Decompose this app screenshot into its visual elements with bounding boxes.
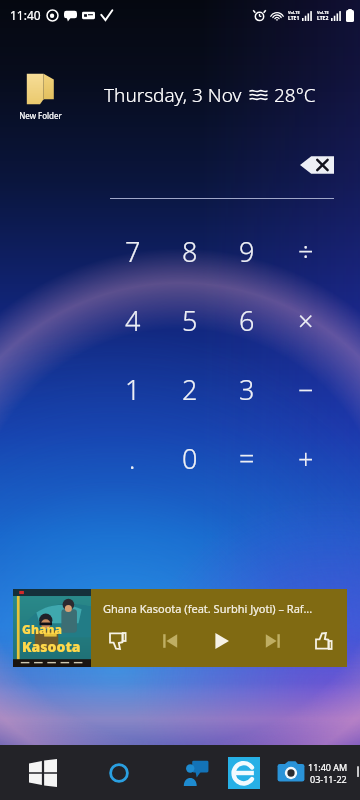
staticText: 0 <box>182 440 198 477</box>
staticText: VoLTE <box>288 10 300 15</box>
button[interactable]: × <box>275 286 337 355</box>
button[interactable]: 5 <box>161 286 218 355</box>
button[interactable]: 11:40 AM <box>308 761 348 785</box>
staticText: ÷ <box>298 233 314 270</box>
button[interactable]: Backspace <box>300 155 334 175</box>
button[interactable]: Thumbs down <box>103 626 133 656</box>
staticText: 28°C <box>274 82 316 108</box>
button[interactable]: Play <box>206 626 236 656</box>
staticText: = <box>239 440 255 477</box>
staticText: 1 <box>125 371 141 408</box>
button[interactable]: 7 <box>104 217 161 286</box>
button[interactable]: = <box>218 424 275 493</box>
button[interactable]: Thursday, 3 Nov <box>104 82 316 108</box>
button[interactable]: ÷ <box>275 217 337 286</box>
staticText: 11:40 <box>10 7 41 23</box>
button[interactable]: Next <box>258 626 288 656</box>
button[interactable]: Edge browser <box>228 757 260 789</box>
button[interactable]: Album art <box>13 589 91 667</box>
staticText: × <box>298 302 314 339</box>
button[interactable]: New Folder <box>14 72 66 121</box>
staticText: Ghana <box>22 621 62 637</box>
staticText: − <box>298 371 314 408</box>
staticText: 3 <box>239 371 255 408</box>
button[interactable]: 1 <box>104 355 161 424</box>
staticText: 5 <box>182 302 198 339</box>
staticText: 03-11-22 <box>310 773 347 785</box>
button[interactable]: − <box>275 355 337 424</box>
staticText: 7 <box>125 233 141 270</box>
button[interactable]: . <box>104 424 161 493</box>
button[interactable]: 9 <box>218 217 275 286</box>
staticText: 6 <box>239 302 255 339</box>
staticText: LTE1 <box>288 15 300 22</box>
button[interactable]: Start <box>26 756 60 790</box>
staticText: . <box>129 441 136 476</box>
staticText: 9 <box>239 233 255 270</box>
staticText: 11:40 AM <box>308 761 348 773</box>
staticText: 8 <box>182 233 198 270</box>
button[interactable]: Cortana <box>102 756 136 790</box>
button[interactable]: Previous <box>155 626 185 656</box>
button[interactable]: Thumbs up <box>309 626 339 656</box>
button[interactable]: + <box>275 424 337 493</box>
staticText: LTE2 <box>317 15 329 22</box>
staticText: 2 <box>182 371 198 408</box>
staticText: 4 <box>125 302 141 339</box>
button[interactable]: 6 <box>218 286 275 355</box>
button[interactable]: People <box>178 756 212 790</box>
staticText: Ghana Kasoota (feat. Surbhi Jyoti) – Raf… <box>103 601 313 616</box>
staticText: New Folder <box>19 110 62 121</box>
staticText: + <box>298 440 314 477</box>
staticText: Kasoota <box>22 637 81 656</box>
button[interactable]: 8 <box>161 217 218 286</box>
button[interactable]: 4 <box>104 286 161 355</box>
staticText: VoLTE <box>317 10 329 15</box>
staticText: Thursday, 3 Nov <box>104 82 242 108</box>
button[interactable]: 2 <box>161 355 218 424</box>
button[interactable]: Camera <box>274 756 308 790</box>
button[interactable]: 3 <box>218 355 275 424</box>
button[interactable]: 0 <box>161 424 218 493</box>
